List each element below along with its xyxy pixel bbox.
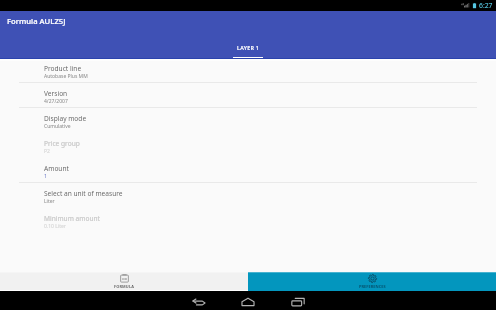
staticText: Version xyxy=(44,89,68,98)
staticText: Liter xyxy=(44,198,55,205)
staticText: Price group xyxy=(44,139,80,148)
button[interactable]: Amount xyxy=(0,158,496,183)
staticText: Amount xyxy=(44,164,69,173)
button[interactable]: Back xyxy=(188,291,210,310)
button[interactable]: Display mode xyxy=(0,108,496,133)
staticText: 1 xyxy=(44,173,47,180)
staticText: Select an unit of measure xyxy=(44,189,123,198)
staticText: 0.10 Liter xyxy=(44,223,66,230)
staticText: P2 xyxy=(44,148,50,155)
button[interactable]: Recent apps xyxy=(287,291,309,310)
button[interactable]: FORMULA xyxy=(0,272,248,291)
button[interactable]: PREFERENCES xyxy=(248,272,496,291)
button[interactable]: Version xyxy=(0,83,496,108)
button[interactable]: Product line xyxy=(0,58,496,83)
staticText: Formula AULZ5J xyxy=(7,16,66,26)
button[interactable]: LAYER 1 xyxy=(233,31,263,59)
staticText: Product line xyxy=(44,64,82,73)
button[interactable]: Home xyxy=(237,291,259,310)
staticText: 6:27 xyxy=(479,1,493,10)
staticText: Display mode xyxy=(44,114,87,123)
staticText: PREFERENCES xyxy=(359,284,386,289)
staticText: FORMULA xyxy=(114,284,134,289)
button[interactable]: Minimum amount xyxy=(0,208,496,233)
staticText: 4/27/2007 xyxy=(44,98,68,105)
staticText: Cumulative xyxy=(44,123,71,130)
button[interactable]: Price group xyxy=(0,133,496,158)
button[interactable]: Select an unit of measure xyxy=(0,183,496,208)
staticText: Minimum amount xyxy=(44,214,100,223)
staticText: Autobase Plus MM xyxy=(44,73,88,80)
staticText: LAYER 1 xyxy=(237,44,260,51)
